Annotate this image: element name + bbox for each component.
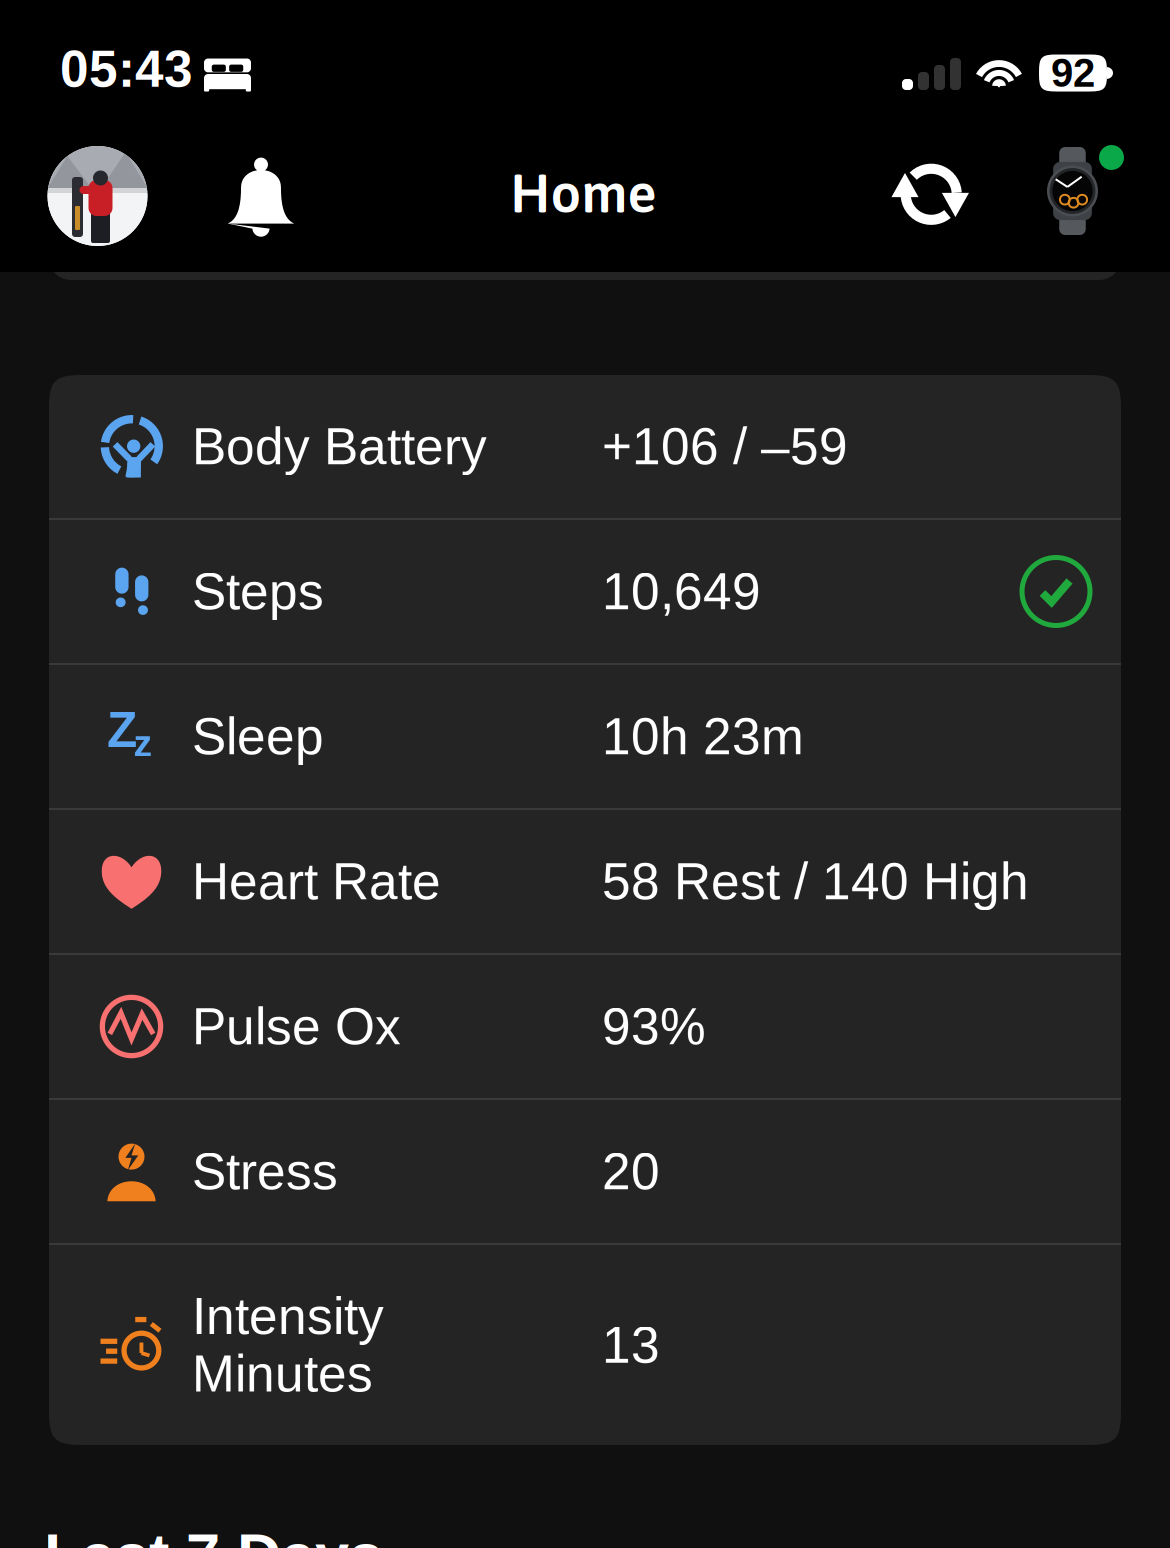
staticText: Steps: [192, 563, 324, 620]
staticText: 05:43: [60, 40, 193, 98]
staticText: 10,649: [602, 563, 761, 620]
button[interactable]: Heart Rate: [49, 810, 1121, 953]
button[interactable]: Steps: [49, 520, 1121, 663]
button[interactable]: Notifications: [226, 145, 296, 257]
button[interactable]: Pulse Ox: [49, 955, 1121, 1098]
button[interactable]: Body Battery: [49, 375, 1121, 518]
staticText: Last 7 Days: [44, 1521, 383, 1548]
staticText: Pulse Ox: [192, 998, 401, 1055]
staticText: 92: [1051, 51, 1095, 95]
staticText: 13: [602, 1316, 660, 1374]
staticText: Z: [107, 702, 137, 757]
button[interactable]: Profile: [47, 145, 148, 257]
staticText: Heart Rate: [192, 853, 441, 910]
button[interactable]: Intensity Minutes: [49, 1245, 1121, 1445]
button[interactable]: Stress: [49, 1100, 1121, 1243]
staticText: 10h 23m: [602, 708, 804, 765]
staticText: Home: [510, 162, 656, 224]
staticText: 20: [602, 1143, 660, 1200]
staticText: 58 Rest / 140 High: [602, 853, 1029, 910]
staticText: Sleep: [192, 708, 324, 765]
staticText: Body Battery: [192, 418, 487, 475]
button[interactable]: Z: [49, 665, 1121, 808]
staticText: Stress: [192, 1143, 338, 1200]
button[interactable]: Connected watch: [1047, 145, 1098, 257]
staticText: z: [133, 722, 152, 764]
staticText: 93%: [602, 998, 706, 1055]
staticText: Intensity Minutes: [192, 1288, 384, 1402]
button[interactable]: Sync: [889, 145, 971, 257]
staticText: +106 / –59: [602, 418, 848, 475]
